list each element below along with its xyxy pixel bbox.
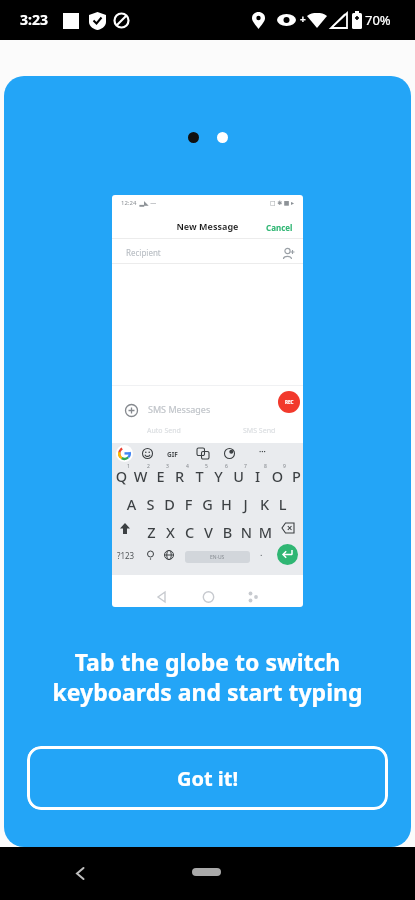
staticText: Cancel xyxy=(266,222,293,233)
staticText: New Message xyxy=(112,220,303,232)
staticText: Auto Send xyxy=(147,426,181,436)
staticText: C xyxy=(181,522,198,542)
staticText: 12:24 ▂◣ — xyxy=(121,199,157,207)
staticText: J xyxy=(237,494,254,514)
staticText: E xyxy=(152,466,169,486)
staticText: H xyxy=(218,494,235,514)
staticText: 70% xyxy=(365,11,391,29)
staticText: 7 xyxy=(244,463,247,470)
staticText: □ ✱ ■ ▸ xyxy=(270,199,295,207)
button[interactable]: Got it! xyxy=(27,746,388,810)
staticText: SMS Send xyxy=(243,426,276,436)
staticText: Recipient xyxy=(126,247,161,258)
button[interactable] xyxy=(192,868,221,876)
staticText: K xyxy=(256,494,273,514)
staticText: 8 xyxy=(264,463,267,470)
staticText: I xyxy=(249,466,266,486)
staticText: M xyxy=(257,522,274,542)
staticText: G xyxy=(199,494,216,514)
staticText: 5 xyxy=(205,463,208,470)
staticText: F xyxy=(180,494,197,514)
staticText: N xyxy=(238,522,255,542)
staticText: ••• xyxy=(259,448,266,456)
staticText: 2 xyxy=(147,463,150,470)
staticText: EN·US xyxy=(210,554,225,561)
staticText: U xyxy=(230,466,247,486)
staticText: Q xyxy=(113,466,130,486)
staticText: T xyxy=(191,466,208,486)
staticText: Z xyxy=(143,522,160,542)
staticText: B xyxy=(219,522,236,542)
staticText: . xyxy=(260,546,263,558)
staticText: ?123 xyxy=(117,550,135,561)
staticText: W xyxy=(132,466,149,486)
staticText: 3 xyxy=(166,463,169,470)
staticText: Y xyxy=(210,466,227,486)
staticText: V xyxy=(200,522,217,542)
staticText: D xyxy=(161,494,178,514)
staticText: P xyxy=(288,466,303,486)
staticText: O xyxy=(269,466,286,486)
staticText: 4 xyxy=(186,463,189,470)
staticText: SMS Messages xyxy=(148,403,211,415)
staticText: Tab the globe to switch keyboards and st… xyxy=(0,646,415,708)
staticText: Got it! xyxy=(177,765,239,792)
button[interactable] xyxy=(74,866,86,881)
staticText: GIF xyxy=(167,450,178,459)
staticText: X xyxy=(162,522,179,542)
staticText: 6 xyxy=(225,463,228,470)
staticText: 9 xyxy=(283,463,286,470)
staticText: R xyxy=(171,466,188,486)
staticText: S xyxy=(142,494,159,514)
staticText: + xyxy=(300,12,306,26)
staticText: L xyxy=(274,494,291,514)
staticText: 3:23 xyxy=(20,10,48,29)
staticText: REC xyxy=(285,399,294,405)
staticText: 1 xyxy=(127,463,130,470)
staticText: A xyxy=(123,494,140,514)
